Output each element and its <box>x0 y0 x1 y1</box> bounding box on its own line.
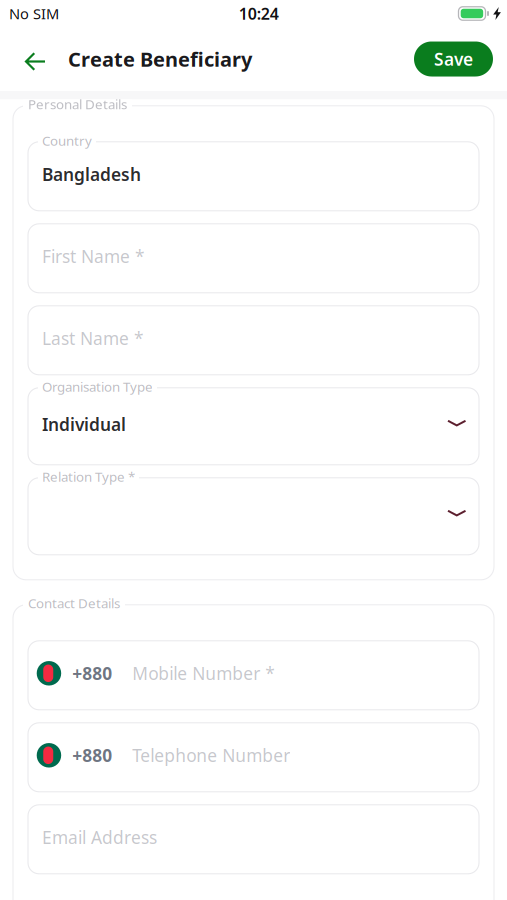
button[interactable]: Back <box>0 29 68 89</box>
staticText: Bangladesh <box>42 163 141 186</box>
staticText: Email Address <box>42 826 157 849</box>
staticText: Save <box>434 47 473 70</box>
staticText: Relation Type * <box>42 468 135 485</box>
staticText: Telephone Number <box>132 744 290 767</box>
staticText: Personal Details <box>28 95 127 113</box>
staticText: Mobile Number * <box>132 662 275 685</box>
staticText: First Name * <box>42 245 145 268</box>
staticText: Last Name * <box>42 327 144 350</box>
staticText: Organisation Type <box>42 378 153 395</box>
staticText: Individual <box>42 413 126 436</box>
staticText: No SIM <box>9 4 59 23</box>
staticText: 10:24 <box>239 3 279 24</box>
staticText: Contact Details <box>28 594 120 612</box>
button[interactable]: Save <box>414 41 493 76</box>
staticText: Create Beneficiary <box>68 46 252 72</box>
staticText: +880 <box>72 744 112 767</box>
staticText: +880 <box>72 662 112 685</box>
staticText: Country <box>42 132 92 149</box>
